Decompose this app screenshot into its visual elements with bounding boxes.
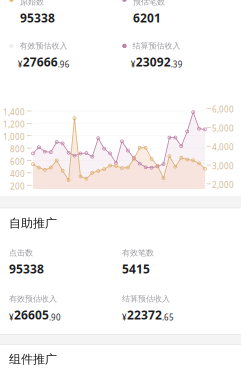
staticText: 有效预估收入 <box>20 41 68 51</box>
staticText: .65 <box>162 312 174 323</box>
staticText: 4,000 <box>212 142 234 153</box>
staticText: 有效笔数 <box>122 248 154 258</box>
staticText: ¥ <box>122 312 127 323</box>
staticText: 6201 <box>133 10 161 26</box>
staticText: 3,000 <box>212 161 234 171</box>
staticText: .90 <box>49 312 61 323</box>
staticText: 600 <box>10 156 25 167</box>
staticText: 27666 <box>23 54 58 70</box>
staticText: 6,000 <box>212 104 234 115</box>
staticText: 结算预估收入 <box>133 41 181 51</box>
staticText: .96 <box>58 59 70 70</box>
staticText: 1,400 <box>3 107 25 117</box>
staticText: 原始数 <box>20 0 44 7</box>
staticText: 预估笔数 <box>133 0 165 7</box>
staticText: 22372 <box>127 307 162 323</box>
staticText: ¥ <box>131 59 136 70</box>
staticText: 95338 <box>9 261 44 277</box>
staticText: 200 <box>10 181 25 192</box>
staticText: 5415 <box>122 261 150 277</box>
staticText: 95338 <box>20 10 55 26</box>
staticText: 5,000 <box>212 123 234 134</box>
staticText: 26605 <box>14 307 49 323</box>
staticText: 自助推广 <box>9 216 57 231</box>
staticText: 结算预估收入 <box>122 294 170 304</box>
staticText: ¥ <box>9 312 14 323</box>
staticText: 400 <box>10 169 25 179</box>
staticText: 23092 <box>136 54 171 70</box>
staticText: 1,000 <box>3 131 25 142</box>
staticText: 有效预估收入 <box>9 294 57 304</box>
staticText: .39 <box>171 59 183 70</box>
staticText: 1,200 <box>3 119 25 130</box>
staticText: 800 <box>10 144 25 154</box>
staticText: ¥ <box>18 59 23 70</box>
staticText: 组件推广 <box>9 352 57 367</box>
staticText: 点击数 <box>9 248 33 258</box>
staticText: 2,000 <box>212 180 234 190</box>
